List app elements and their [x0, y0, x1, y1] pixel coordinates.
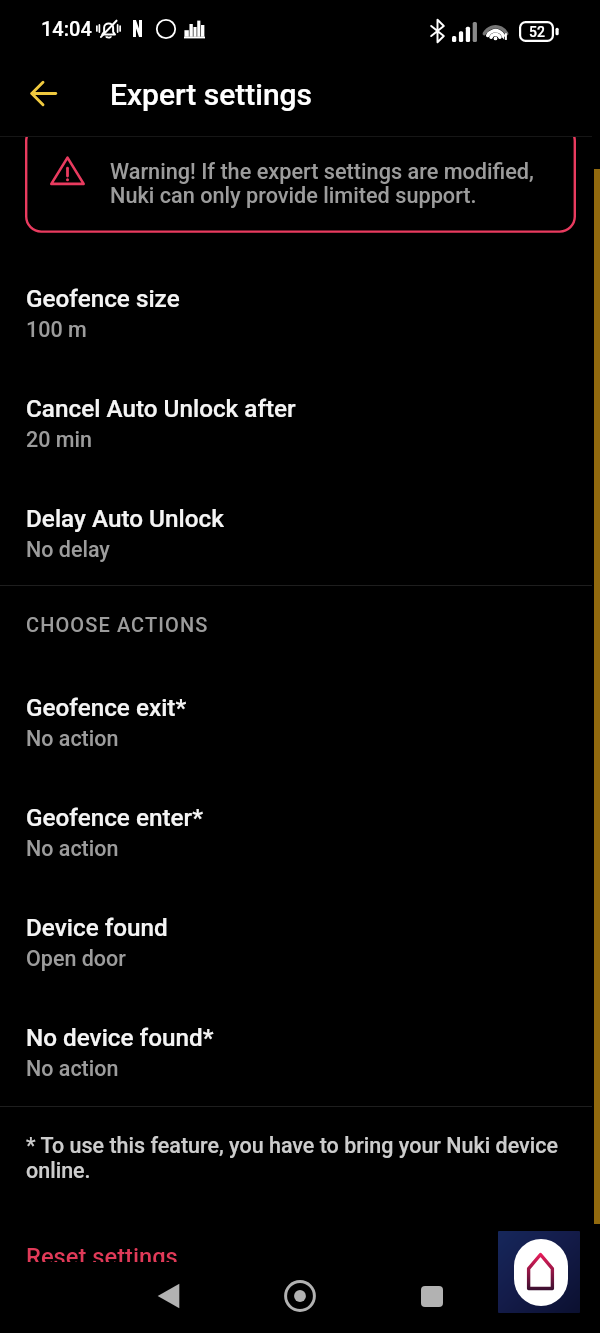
- staticText: Geofence enter*: [26, 803, 203, 831]
- staticText: No device found*: [26, 1023, 214, 1051]
- button[interactable]: Delay Auto Unlock: [0, 498, 600, 570]
- staticText: * To use this feature, you have to bring…: [26, 1133, 558, 1183]
- button[interactable]: Geofence exit*: [0, 687, 600, 759]
- button[interactable]: No device found*: [0, 1017, 600, 1089]
- button[interactable]: Back: [19, 69, 67, 117]
- staticText: No action: [26, 836, 119, 861]
- button[interactable]: Back: [140, 1268, 196, 1324]
- staticText: 20 min: [26, 427, 92, 452]
- staticText: Expert settings: [110, 77, 313, 112]
- staticText: Geofence size: [26, 284, 180, 312]
- button[interactable]: Warning! If the expert settings are modi…: [25, 137, 576, 234]
- button[interactable]: Geofence enter*: [0, 797, 600, 869]
- staticText: Warning! If the expert settings are modi…: [110, 159, 534, 208]
- staticText: No action: [26, 1056, 119, 1081]
- button[interactable]: Home: [272, 1268, 328, 1324]
- staticText: Cancel Auto Unlock after: [26, 394, 296, 422]
- button[interactable]: Cancel Auto Unlock after: [0, 388, 600, 460]
- staticText: Geofence exit*: [26, 693, 187, 721]
- button[interactable]: Geofence size: [0, 278, 600, 350]
- staticText: Delay Auto Unlock: [26, 504, 224, 532]
- staticText: Open door: [26, 946, 126, 971]
- staticText: Device found: [26, 913, 168, 941]
- staticText: CHOOSE ACTIONS: [26, 613, 209, 636]
- staticText: 100 m: [26, 317, 87, 342]
- staticText: No action: [26, 726, 119, 751]
- staticText: 52: [529, 24, 545, 40]
- button[interactable]: Reset settings: [0, 1236, 600, 1262]
- button[interactable]: Recent apps: [404, 1268, 460, 1324]
- button[interactable]: Nuki app: [498, 1231, 580, 1313]
- staticText: Reset settings: [26, 1243, 178, 1262]
- staticText: No delay: [26, 537, 110, 562]
- button[interactable]: Device found: [0, 907, 600, 979]
- staticText: 14:04: [41, 17, 92, 40]
